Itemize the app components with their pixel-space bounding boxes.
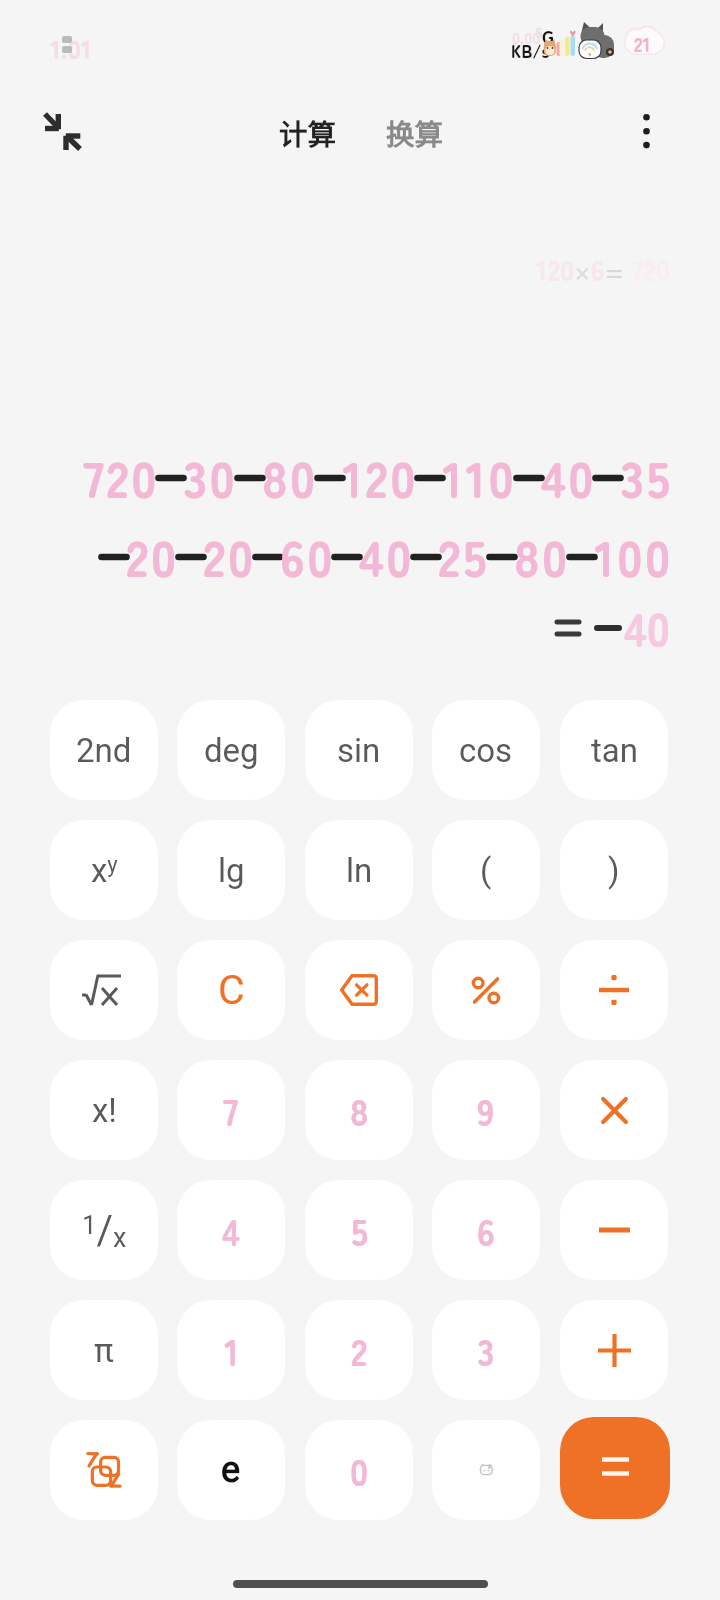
button[interactable]: More options bbox=[620, 105, 676, 165]
staticText: 80 bbox=[262, 440, 318, 512]
button[interactable]: 3 bbox=[432, 1300, 540, 1400]
button[interactable]: Plus bbox=[560, 1300, 668, 1400]
other: Plus bbox=[598, 1334, 631, 1367]
button[interactable]: xy bbox=[50, 820, 158, 920]
staticText: 20 bbox=[126, 519, 179, 591]
staticText: 80 bbox=[514, 519, 570, 591]
other: Convert bbox=[87, 1452, 121, 1488]
button[interactable]: deg bbox=[177, 700, 285, 800]
staticText: 4 bbox=[222, 1204, 240, 1256]
staticText: 21 bbox=[634, 30, 651, 58]
button[interactable]: Minus bbox=[560, 1180, 668, 1280]
staticText: ) bbox=[608, 851, 620, 890]
button[interactable]: e bbox=[177, 1420, 285, 1520]
staticText: e bbox=[221, 1449, 241, 1491]
button[interactable]: 1/x bbox=[50, 1180, 158, 1280]
button[interactable]: 6 bbox=[432, 1180, 540, 1280]
staticText: 9 bbox=[477, 1084, 495, 1136]
staticText: 40 bbox=[359, 519, 414, 591]
staticText: 8 bbox=[350, 1084, 369, 1136]
button[interactable]: x! bbox=[50, 1060, 158, 1160]
other: Minus bbox=[599, 1225, 630, 1235]
other: Backspace bbox=[340, 974, 378, 1006]
button[interactable]: 0 bbox=[305, 1420, 413, 1520]
button[interactable]: 2nd bbox=[50, 700, 158, 800]
staticText: 7 bbox=[223, 1084, 239, 1136]
staticText: 0 bbox=[350, 1444, 369, 1496]
staticText: 20 bbox=[203, 519, 256, 591]
staticText: 6 bbox=[477, 1204, 495, 1256]
button[interactable]: 9 bbox=[432, 1060, 540, 1160]
button[interactable]: Exit full screen bbox=[36, 106, 88, 158]
staticText: C bbox=[218, 966, 245, 1014]
button[interactable]: ( bbox=[432, 820, 540, 920]
button[interactable]: 4 bbox=[177, 1180, 285, 1280]
button[interactable]: Equals bbox=[560, 1417, 670, 1519]
other: Multiply bbox=[601, 1097, 628, 1124]
staticText: KB/s bbox=[511, 38, 550, 63]
staticText: cos bbox=[459, 731, 513, 770]
button[interactable] bbox=[50, 940, 158, 1040]
button[interactable]: Convert bbox=[50, 1420, 158, 1520]
button[interactable]: cos bbox=[432, 700, 540, 800]
other: Divide bbox=[599, 975, 629, 1005]
staticText: 35 bbox=[620, 440, 673, 512]
staticText: 1/x bbox=[82, 1207, 127, 1254]
button[interactable]: 计算 bbox=[279, 112, 337, 153]
button[interactable]: ) bbox=[560, 820, 668, 920]
button[interactable]: Backspace bbox=[305, 940, 413, 1040]
other: Equals bbox=[602, 1457, 629, 1480]
staticText: 100 bbox=[594, 519, 673, 591]
staticText: xy bbox=[91, 851, 118, 890]
staticText: tan bbox=[591, 731, 638, 770]
other: Percent bbox=[471, 976, 501, 1005]
button[interactable]: ln bbox=[305, 820, 413, 920]
staticText: 换算 bbox=[386, 112, 444, 153]
staticText: 2nd bbox=[76, 731, 132, 770]
button[interactable]: 8 bbox=[305, 1060, 413, 1160]
button[interactable]: Divide bbox=[560, 940, 668, 1040]
staticText: 5 bbox=[351, 1204, 368, 1256]
staticText: 110 bbox=[442, 440, 517, 512]
staticText: 720 bbox=[83, 440, 159, 512]
staticText: 30 bbox=[183, 440, 238, 512]
button[interactable]: lg bbox=[177, 820, 285, 920]
staticText: 3 bbox=[477, 1324, 495, 1376]
button[interactable]: Decimal point bbox=[432, 1420, 540, 1520]
button[interactable]: 换算 bbox=[386, 112, 444, 153]
staticText: 5 bbox=[536, 23, 543, 42]
button[interactable]: 2 bbox=[305, 1300, 413, 1400]
staticText: x! bbox=[92, 1091, 117, 1130]
staticText: G bbox=[542, 23, 554, 49]
staticText: deg bbox=[204, 731, 259, 770]
staticText: sin bbox=[337, 731, 381, 770]
button[interactable]: 7 bbox=[177, 1060, 285, 1160]
staticText: ( bbox=[480, 851, 492, 890]
staticText: 1 bbox=[224, 1324, 239, 1376]
staticText: 0.00 bbox=[512, 25, 541, 48]
button[interactable]: C bbox=[177, 940, 285, 1040]
button[interactable]: sin bbox=[305, 700, 413, 800]
staticText: 1:01 bbox=[50, 29, 92, 67]
button[interactable]: π bbox=[50, 1300, 158, 1400]
button[interactable]: 1 bbox=[177, 1300, 285, 1400]
staticText: π bbox=[94, 1331, 114, 1370]
staticText: 2 bbox=[351, 1324, 368, 1376]
other: Decimal point bbox=[479, 1464, 494, 1476]
staticText: 40 bbox=[541, 440, 596, 512]
staticText: ln bbox=[346, 851, 373, 890]
button[interactable]: 5 bbox=[305, 1180, 413, 1280]
staticText: 计算 bbox=[279, 112, 337, 153]
staticText: lg bbox=[218, 851, 245, 890]
button[interactable]: tan bbox=[560, 700, 668, 800]
staticText: 60 bbox=[280, 519, 335, 591]
button[interactable]: Multiply bbox=[560, 1060, 668, 1160]
staticText: 120 bbox=[342, 440, 418, 512]
button[interactable]: Percent bbox=[432, 940, 540, 1040]
staticText: 40 bbox=[624, 594, 670, 661]
staticText: 25 bbox=[438, 519, 490, 591]
